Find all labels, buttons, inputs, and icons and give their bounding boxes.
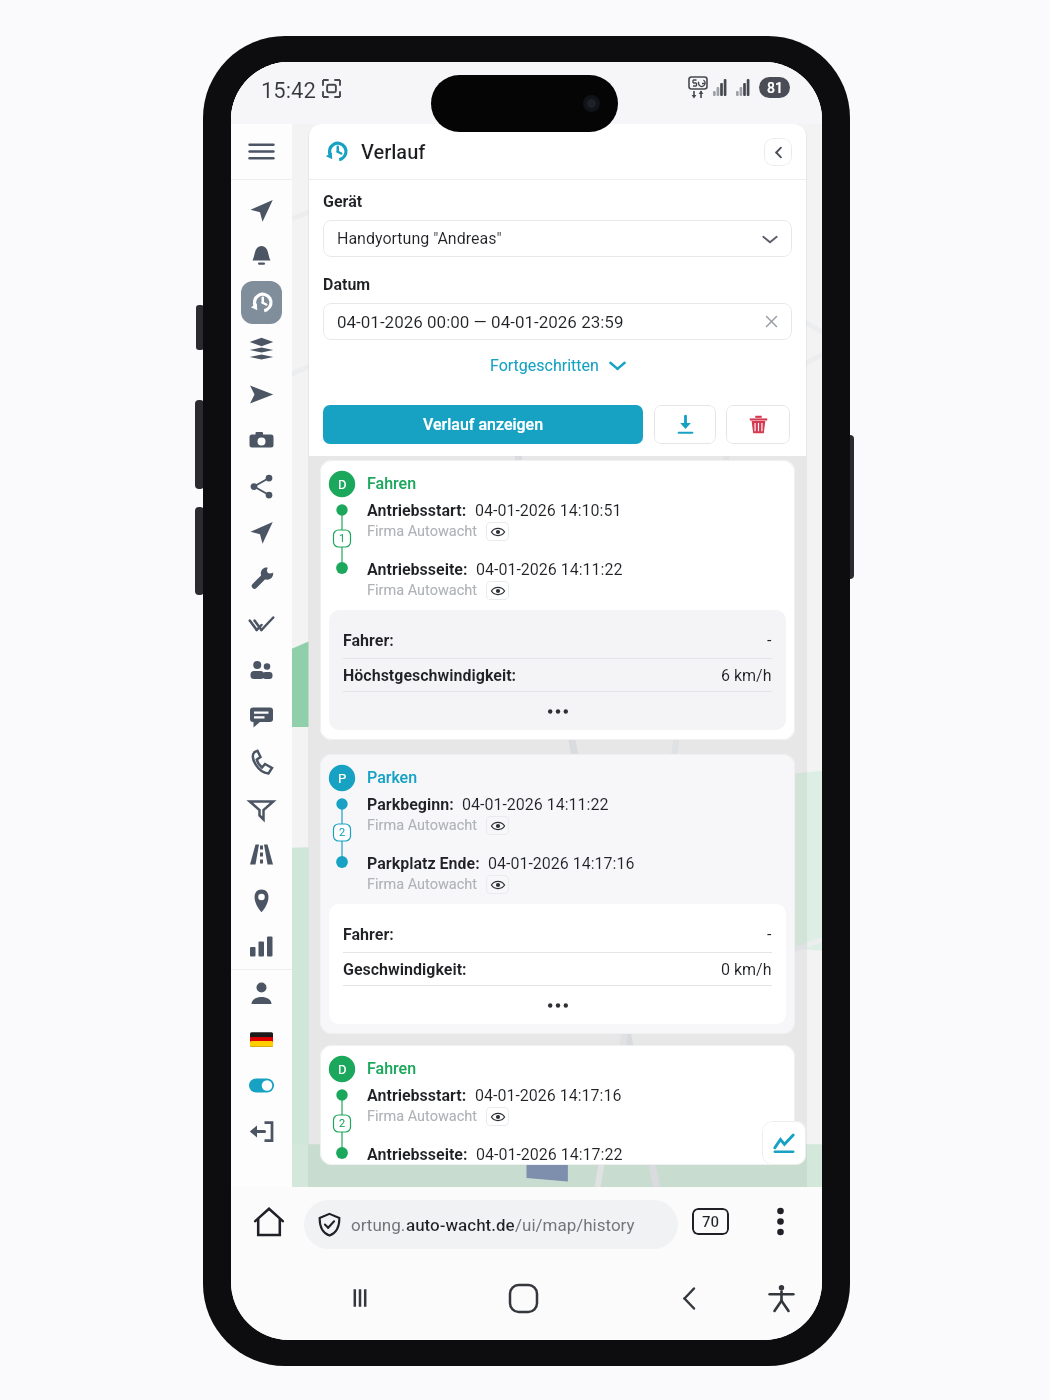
button[interactable]: Camera [231,417,292,463]
button[interactable]: 04-01-2026 00:00 — 04-01-2026 23:59 [337,303,778,340]
staticText: Verlauf anzeigen [423,415,544,434]
button[interactable]: Show [486,1107,509,1126]
staticText: Fahren [367,1059,417,1078]
staticText: Datum [323,275,371,294]
button[interactable]: Tabs [692,1208,729,1235]
button[interactable]: Back [661,1270,717,1326]
button[interactable]: Layers [231,325,292,371]
staticText: Antriebsstart: [367,501,467,520]
staticText: auto-wacht.de [406,1215,515,1235]
button[interactable]: Verlauf anzeigen [323,405,643,444]
staticText: Firma Autowacht [367,1108,478,1125]
staticText: 04-01-2026 14:17:22 [476,1145,623,1164]
button[interactable]: Back [764,138,792,166]
staticText: - [767,631,772,650]
button[interactable]: Share [231,463,292,509]
button[interactable]: D [320,1045,795,1165]
staticText: 04-01-2026 14:11:22 [476,560,623,579]
button[interactable]: Account [231,970,292,1016]
button[interactable]: Users [231,647,292,693]
staticText: 6 km/h [721,666,772,685]
staticText: 04-01-2026 14:10:51 [475,501,622,520]
staticText: D [338,1062,347,1077]
staticText: Gerät [323,192,363,211]
staticText: Firma Autowacht [367,523,478,540]
staticText: Fortgeschritten [490,356,599,375]
staticText: 04-01-2026 14:17:16 [475,1086,622,1105]
staticText: Handyortung "Andreas" [337,229,502,248]
button[interactable]: More options [760,1201,800,1241]
button[interactable]: Filter [231,785,292,831]
staticText: 0 km/h [721,960,772,979]
staticText: Höchstgeschwindigkeit: [343,666,517,685]
staticText: Fahrer: [343,925,394,944]
button[interactable]: Locate [231,187,292,233]
staticText: Fahrer: [343,631,394,650]
staticText: P [338,771,347,786]
button[interactable]: Statistics [231,923,292,969]
button[interactable]: Menu [231,124,292,179]
staticText: Firma Autowacht [367,876,478,893]
button[interactable]: Send [231,371,292,417]
staticText: 70 [702,1213,720,1231]
staticText: 2 [339,1117,346,1130]
button[interactable]: Show [486,581,509,600]
staticText: Parkbeginn: [367,795,454,814]
staticText: Geschwindigkeit: [343,960,467,979]
staticText: /ui/map/history [515,1215,635,1235]
button[interactable]: Fortgeschritten [323,340,792,390]
staticText: Parkplatz Ende: [367,854,480,873]
button[interactable]: Home [495,1270,551,1326]
staticText: Antriebsseite: [367,1145,468,1164]
button[interactable]: Chat [231,693,292,739]
staticText: - [767,925,772,944]
staticText: 15:42 [261,78,316,104]
staticText: Antriebsseite: [367,560,468,579]
staticText: Antriebsstart: [367,1086,467,1105]
staticText: Fahren [367,474,417,493]
button[interactable]: Places [231,877,292,923]
button[interactable]: Handyortung "Andreas" [337,220,778,257]
button[interactable]: Show [486,875,509,894]
staticText: Firma Autowacht [367,817,478,834]
button[interactable]: Chart [762,1121,806,1165]
staticText: Firma Autowacht [367,582,478,599]
staticText: 81 [767,80,783,96]
button[interactable]: Download [654,405,716,444]
staticText: 04-01-2026 14:17:16 [488,854,635,873]
button[interactable]: Language [231,1016,292,1062]
button[interactable]: Show [486,816,509,835]
button[interactable]: Alerts [231,233,292,279]
button[interactable]: Recents [332,1270,388,1326]
staticText: D [338,477,347,492]
button[interactable]: Settings [231,555,292,601]
button[interactable]: ortung. [318,1200,666,1249]
staticText: 04-01-2026 00:00 — 04-01-2026 23:59 [337,312,624,332]
button[interactable]: D [320,460,795,740]
staticText: Verlauf [361,140,426,163]
staticText: 04-01-2026 14:11:22 [462,795,609,814]
button[interactable]: Accessibility [753,1270,809,1326]
staticText: 1 [339,532,346,545]
staticText: ortung. [351,1215,406,1235]
button[interactable]: P [320,754,795,1034]
button[interactable]: Home [247,1200,291,1244]
button[interactable]: Routes [231,831,292,877]
button[interactable]: History [231,279,292,325]
button[interactable]: Navigate [231,509,292,555]
button[interactable]: Delete [726,405,790,444]
button[interactable]: Tasks [231,601,292,647]
button[interactable]: Show [486,522,509,541]
button[interactable]: Logout [231,1108,292,1154]
button[interactable]: Toggle [231,1062,292,1108]
button[interactable]: Call [231,739,292,785]
staticText: 2 [339,826,346,839]
staticText: Parken [367,768,418,787]
